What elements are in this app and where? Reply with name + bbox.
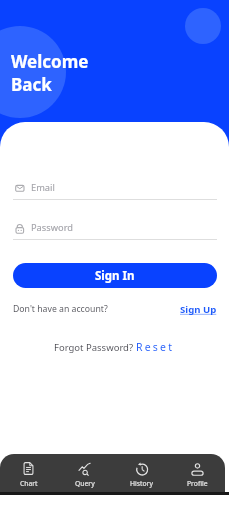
- button[interactable]: Password: [13, 218, 217, 236]
- staticText: Sign In: [95, 268, 135, 284]
- staticText: Welcome: [11, 50, 89, 73]
- staticText: Profile: [187, 479, 208, 488]
- staticText: Forgot Password?: [54, 341, 136, 354]
- button[interactable]: Query: [57, 454, 113, 492]
- button[interactable]: Email: [13, 178, 217, 196]
- staticText: Chart: [20, 479, 38, 488]
- button[interactable]: Sign In: [13, 263, 217, 288]
- button[interactable]: Sign Up: [180, 303, 217, 316]
- staticText: Don't have an account?: [13, 303, 108, 315]
- button[interactable]: History: [113, 454, 169, 492]
- staticText: Email: [31, 181, 55, 194]
- staticText: Password: [31, 221, 74, 234]
- staticText: Query: [75, 479, 95, 488]
- button[interactable]: Chart: [0, 454, 57, 492]
- staticText: History: [130, 479, 153, 488]
- staticText: Back: [11, 73, 52, 96]
- button[interactable]: Profile: [169, 454, 225, 492]
- button[interactable]: Reset: [136, 340, 175, 354]
- staticText: Reset: [136, 340, 175, 354]
- staticText: Sign Up: [180, 303, 217, 316]
